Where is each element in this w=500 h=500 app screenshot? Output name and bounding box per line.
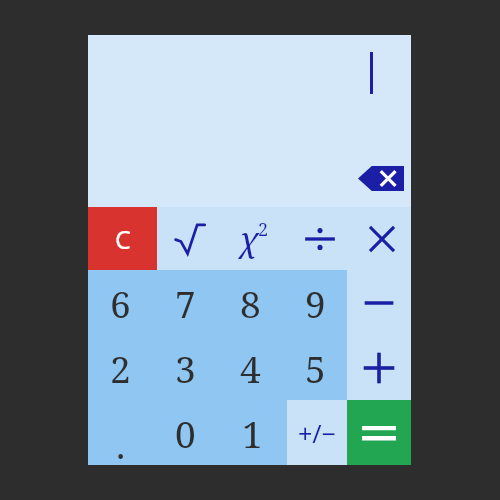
button[interactable]: 6: [88, 270, 153, 335]
staticText: .: [116, 419, 126, 469]
button[interactable]: 0: [153, 400, 218, 465]
staticText: χ: [240, 217, 258, 261]
staticText: 2: [110, 343, 131, 393]
staticText: 8: [240, 278, 261, 328]
button[interactable]: 7: [153, 270, 218, 335]
button[interactable]: 8: [218, 270, 283, 335]
staticText: 9: [305, 278, 326, 328]
button[interactable]: 4: [218, 335, 283, 400]
button[interactable]: Equals: [347, 400, 411, 465]
button[interactable]: Backspace: [358, 165, 404, 192]
staticText: 1: [242, 408, 263, 458]
button[interactable]: Divide: [287, 207, 352, 270]
button[interactable]: 2: [88, 335, 153, 400]
button[interactable]: Plus: [347, 335, 411, 400]
button[interactable]: Minus: [347, 270, 411, 335]
staticText: +/−: [298, 416, 336, 450]
button[interactable]: 3: [153, 335, 218, 400]
staticText: C: [115, 222, 131, 256]
button[interactable]: Square: [222, 207, 287, 270]
staticText: 7: [175, 278, 196, 328]
button[interactable]: Multiply: [352, 207, 411, 270]
button[interactable]: 9: [283, 270, 347, 335]
staticText: 2: [258, 217, 269, 242]
staticText: 6: [110, 278, 131, 328]
button[interactable]: Clear: [88, 207, 157, 270]
staticText: 3: [175, 343, 196, 393]
staticText: 4: [240, 343, 261, 393]
staticText: 0: [175, 408, 196, 458]
button[interactable]: Square root: [157, 207, 222, 270]
button[interactable]: Plus minus sign: [287, 400, 347, 465]
button[interactable]: 1: [218, 400, 287, 465]
button[interactable]: 5: [283, 335, 347, 400]
button[interactable]: Decimal point: [88, 400, 153, 465]
staticText: 5: [305, 343, 326, 393]
